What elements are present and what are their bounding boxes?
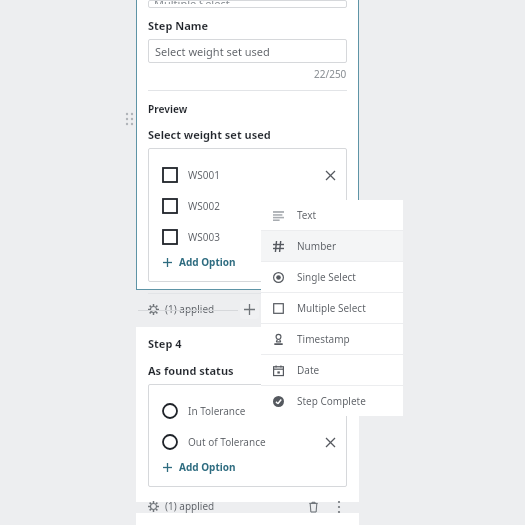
- button[interactable]: Remove WS001: [321, 166, 339, 184]
- button[interactable]: Add Option: [148, 252, 347, 272]
- button[interactable]: (1) applied: [148, 499, 215, 513]
- staticText: Multiple Select: [154, 0, 230, 4]
- button[interactable]: WS002: [148, 190, 347, 221]
- button[interactable]: WS003: [148, 221, 347, 252]
- staticText: (1) applied: [165, 302, 215, 316]
- button[interactable]: Step Complete: [261, 386, 403, 416]
- button[interactable]: Multiple Select: [261, 293, 403, 323]
- staticText: Timestamp: [297, 332, 350, 346]
- button[interactable]: Drag step: [123, 112, 137, 126]
- staticText: WS001: [188, 168, 220, 182]
- staticText: Text: [297, 208, 317, 222]
- staticText: Add Option: [179, 255, 236, 269]
- staticText: Out of Tolerance: [188, 435, 266, 449]
- button[interactable]: Single Select: [261, 262, 403, 292]
- button[interactable]: Text: [261, 200, 403, 230]
- button[interactable]: Add Option: [148, 457, 347, 477]
- button[interactable]: Multiple Select: [148, 0, 347, 8]
- staticText: Number: [297, 239, 337, 253]
- button[interactable]: Delete: [305, 498, 321, 514]
- staticText: Step 4: [148, 336, 182, 351]
- button[interactable]: Number: [261, 231, 403, 261]
- staticText: WS003: [188, 230, 220, 244]
- staticText: (1) applied: [165, 499, 215, 513]
- button[interactable]: Remove Out of Tolerance: [321, 433, 339, 451]
- staticText: Step Complete: [297, 394, 366, 408]
- button[interactable]: In Tolerance: [148, 395, 347, 426]
- button[interactable]: WS001: [148, 159, 347, 190]
- button[interactable]: More options: [331, 498, 347, 514]
- staticText: 22/250: [314, 67, 347, 81]
- staticText: As found status: [148, 363, 234, 378]
- button[interactable]: Date: [261, 355, 403, 385]
- staticText: Single Select: [297, 270, 356, 284]
- button[interactable]: (1) applied: [148, 302, 347, 316]
- button[interactable]: Add step: [240, 300, 259, 319]
- staticText: Add Option: [179, 460, 236, 474]
- staticText: In Tolerance: [188, 404, 246, 418]
- staticText: Date: [297, 363, 320, 377]
- button[interactable]: Out of Tolerance: [148, 426, 347, 457]
- staticText: WS002: [188, 199, 220, 213]
- staticText: Preview: [148, 102, 188, 116]
- staticText: Select weight set used: [155, 44, 270, 59]
- staticText: Select weight set used: [148, 127, 271, 142]
- staticText: Multiple Select: [297, 301, 366, 315]
- staticText: Step Name: [148, 18, 209, 33]
- button[interactable]: Select weight set used: [148, 39, 347, 63]
- button[interactable]: Timestamp: [261, 324, 403, 354]
